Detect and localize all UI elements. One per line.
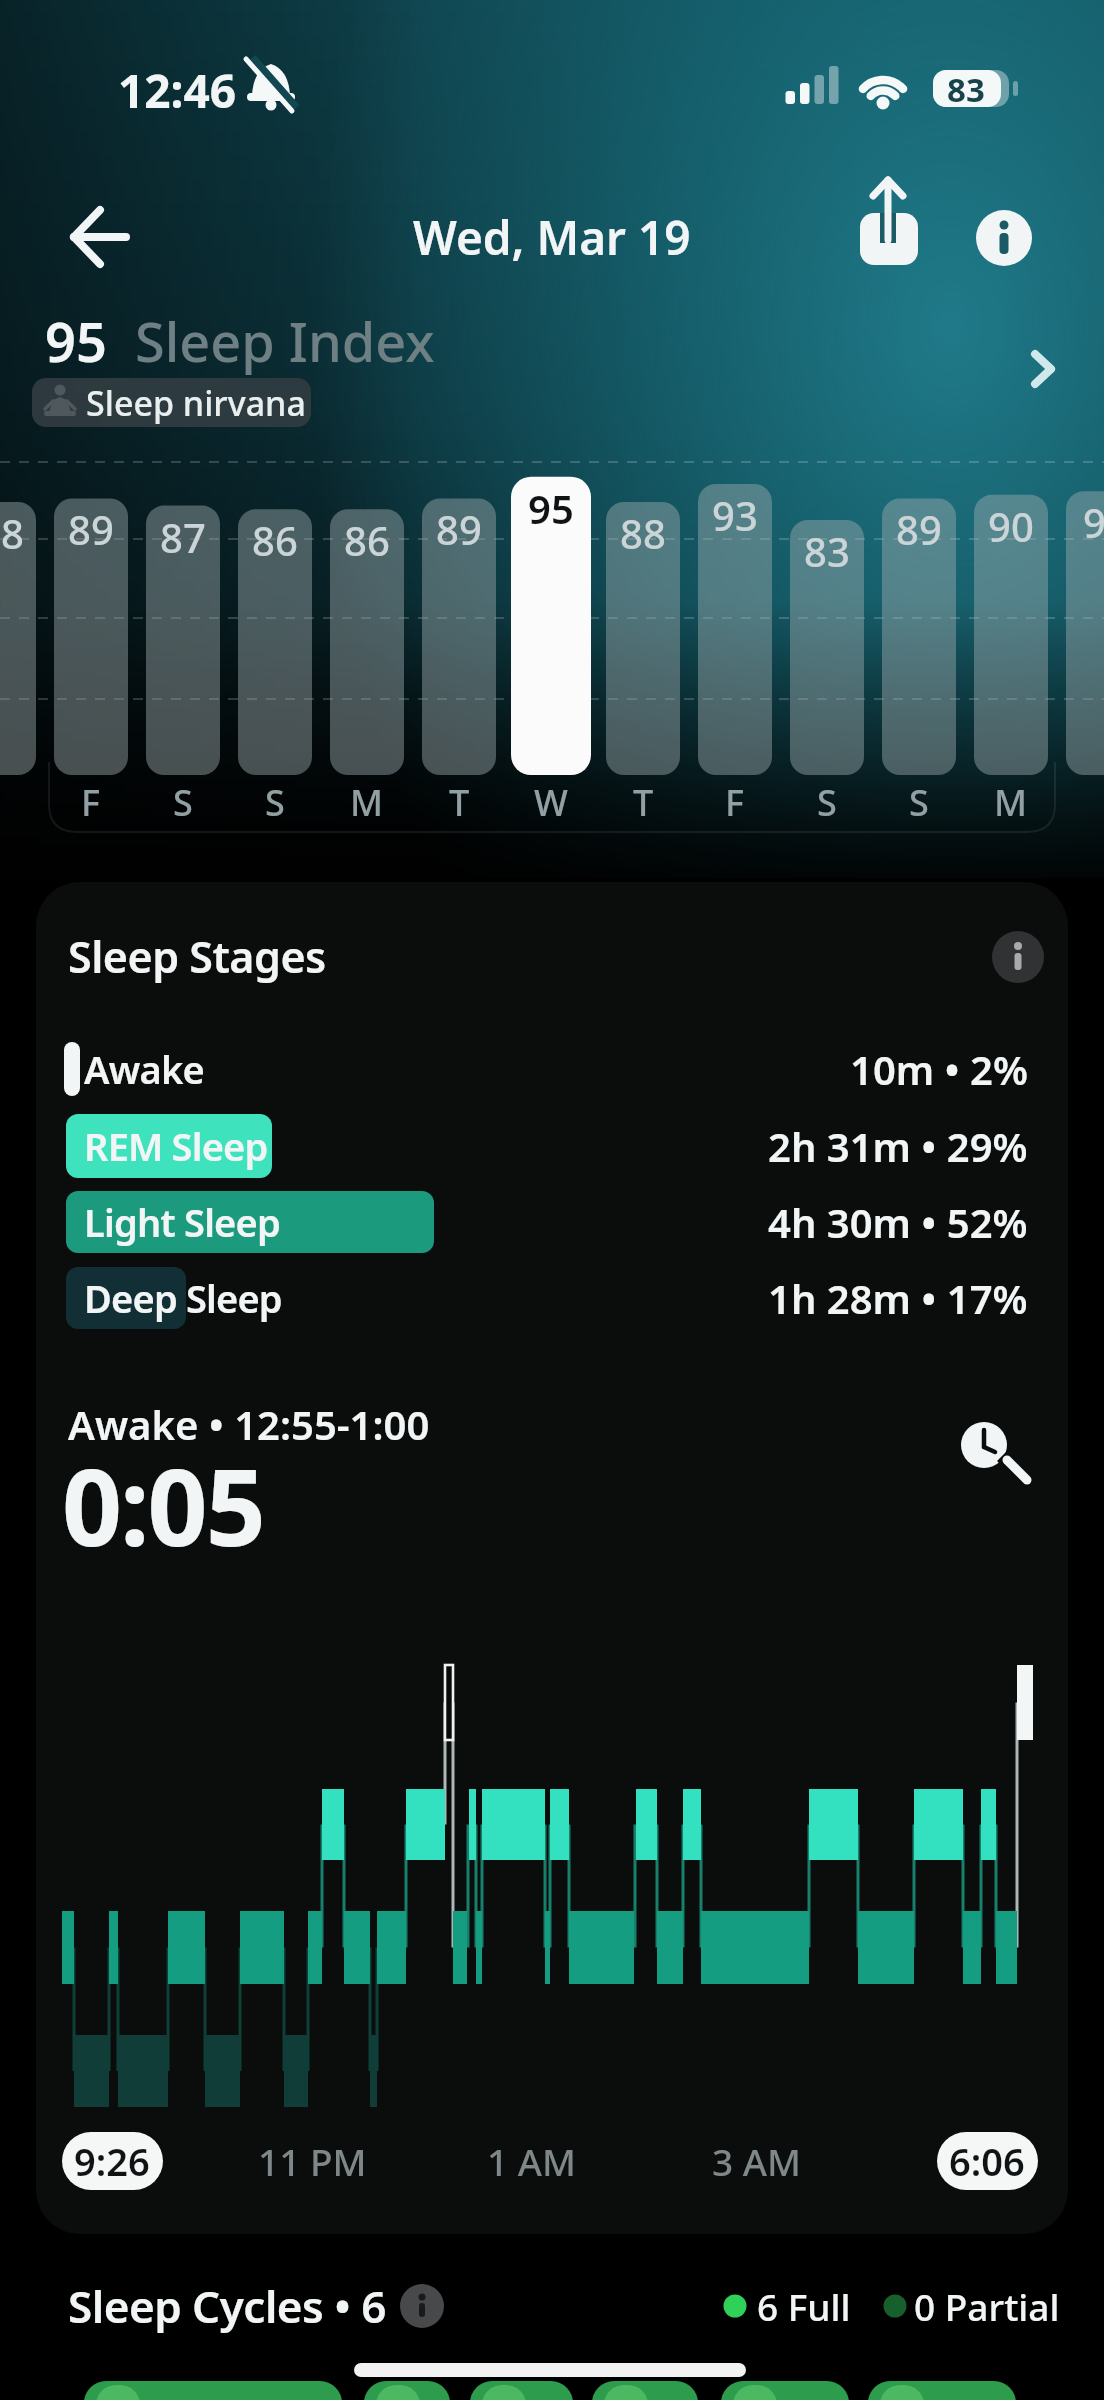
staticText: 89 xyxy=(896,502,942,556)
staticText: 90 xyxy=(988,499,1034,553)
staticText: 1 AM xyxy=(487,2136,576,2186)
staticText: 12:46 xyxy=(118,59,237,122)
button[interactable] xyxy=(84,2381,342,2400)
staticText: S xyxy=(909,778,929,827)
staticText: 10m • 2% xyxy=(850,1042,1028,1096)
button[interactable] xyxy=(986,925,1050,989)
staticText: 0 Partial xyxy=(914,2281,1060,2331)
staticText: 87 xyxy=(160,510,206,564)
staticText: 83 xyxy=(804,524,850,578)
button[interactable] xyxy=(968,202,1040,274)
staticText: S xyxy=(817,778,837,827)
staticText: T xyxy=(449,778,470,827)
staticText: Awake • 12:55-1:00 xyxy=(68,1397,430,1451)
staticText: 95 xyxy=(528,481,574,535)
staticText: Sleep nirvana xyxy=(86,380,306,426)
button[interactable] xyxy=(32,378,311,427)
staticText: W xyxy=(534,778,568,827)
staticText: 9:26 xyxy=(74,2135,150,2187)
button[interactable] xyxy=(62,2132,163,2190)
staticText: F xyxy=(725,778,745,827)
staticText: Sleep Stages xyxy=(68,927,326,986)
staticText: 6:06 xyxy=(949,2135,1025,2187)
staticText: REM Sleep xyxy=(84,1120,268,1172)
staticText: 86 xyxy=(344,513,390,567)
staticText: 3 AM xyxy=(712,2136,801,2186)
staticText: 11 PM xyxy=(258,2136,367,2186)
button[interactable] xyxy=(388,2280,440,2332)
staticText: S xyxy=(173,778,193,827)
staticText: 88 xyxy=(620,506,666,560)
staticText: 4h 30m • 52% xyxy=(768,1195,1028,1249)
staticText: Wed, Mar 19 xyxy=(413,206,691,269)
staticText: 9 xyxy=(1083,495,1104,549)
button[interactable] xyxy=(592,2381,698,2400)
staticText: 8 xyxy=(1,506,24,560)
staticText: Deep Sleep xyxy=(84,1272,282,1324)
button[interactable] xyxy=(470,2381,573,2400)
button[interactable] xyxy=(364,2381,450,2400)
staticText: 86 xyxy=(252,513,298,567)
staticText: 95 xyxy=(45,304,107,378)
staticText: 0:05 xyxy=(62,1434,264,1577)
button[interactable] xyxy=(850,200,928,276)
staticText: T xyxy=(633,778,654,827)
staticText: 89 xyxy=(436,502,482,556)
staticText: Light Sleep xyxy=(84,1196,280,1248)
button[interactable] xyxy=(952,1412,1038,1484)
button[interactable] xyxy=(36,306,1068,376)
staticText: 93 xyxy=(712,488,758,542)
staticText: 1h 28m • 17% xyxy=(768,1271,1028,1325)
staticText: F xyxy=(81,778,101,827)
button[interactable] xyxy=(868,2381,1016,2400)
button[interactable] xyxy=(721,2381,849,2400)
button[interactable] xyxy=(937,2132,1038,2190)
button[interactable] xyxy=(58,203,138,273)
staticText: 2h 31m • 29% xyxy=(768,1119,1028,1173)
staticText: Awake xyxy=(84,1043,204,1095)
staticText: 6 Full xyxy=(757,2281,851,2331)
staticText: Sleep Cycles • 6 xyxy=(68,2276,386,2336)
staticText: 89 xyxy=(68,502,114,556)
staticText: 83 xyxy=(947,67,985,112)
staticText: M xyxy=(994,778,1028,827)
staticText: Sleep Index xyxy=(135,304,435,378)
staticText: M xyxy=(350,778,384,827)
staticText: S xyxy=(265,778,285,827)
